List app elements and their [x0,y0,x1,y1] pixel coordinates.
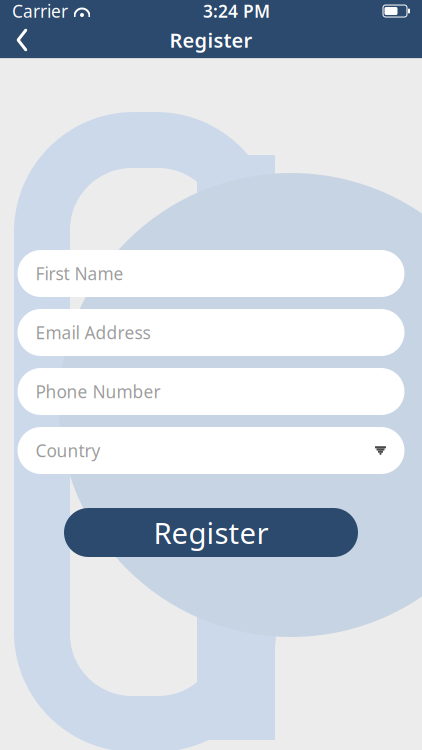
button[interactable]: Country [17,427,404,474]
staticText: 3:24 PM [203,0,270,22]
staticText: Register [169,27,252,53]
staticText: Register [153,513,268,552]
staticText: Country [35,439,100,462]
staticText: Phone Number [35,380,160,403]
button[interactable]: Email Address [17,309,404,356]
staticText: Email Address [35,321,150,344]
button[interactable]: First Name [17,250,404,297]
button[interactable]: Phone Number [17,368,404,415]
staticText: First Name [35,262,123,285]
button[interactable]: Register [64,508,358,557]
staticText: Carrier [12,0,68,22]
button[interactable]: Back [0,22,44,58]
